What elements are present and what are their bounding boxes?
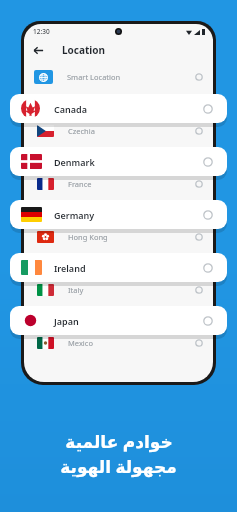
staticText: خوادم عالمية: [65, 430, 173, 453]
button[interactable]: Mexico: [24, 330, 213, 355]
button[interactable]: Ireland: [10, 253, 227, 282]
staticText: 12:30: [33, 27, 50, 36]
button[interactable]: France: [24, 171, 213, 196]
staticText: Italy: [68, 285, 84, 295]
staticText: Mexico: [68, 338, 93, 348]
staticText: Czechia: [68, 126, 95, 136]
button[interactable]: Japan: [10, 306, 227, 335]
button[interactable]: Denmark: [10, 147, 227, 176]
staticText: Denmark: [54, 156, 95, 168]
button[interactable]: Germany: [10, 200, 227, 229]
staticText: Canada: [54, 103, 87, 115]
staticText: مجهولة الهوية: [60, 455, 177, 478]
staticText: Location: [62, 43, 106, 57]
button[interactable]: Hong Kong: [24, 224, 213, 249]
staticText: Smart Location: [67, 72, 121, 82]
button[interactable]: Czechia: [24, 118, 213, 143]
staticText: Japan: [54, 315, 79, 327]
button[interactable]: Smart Location: [24, 64, 213, 90]
staticText: France: [68, 179, 92, 189]
staticText: Ireland: [54, 262, 86, 274]
staticText: Hong Kong: [68, 232, 108, 242]
button[interactable]: Canada: [10, 94, 227, 123]
staticText: Germany: [54, 209, 95, 221]
button[interactable]: Back: [29, 41, 47, 59]
button[interactable]: Italy: [24, 277, 213, 302]
